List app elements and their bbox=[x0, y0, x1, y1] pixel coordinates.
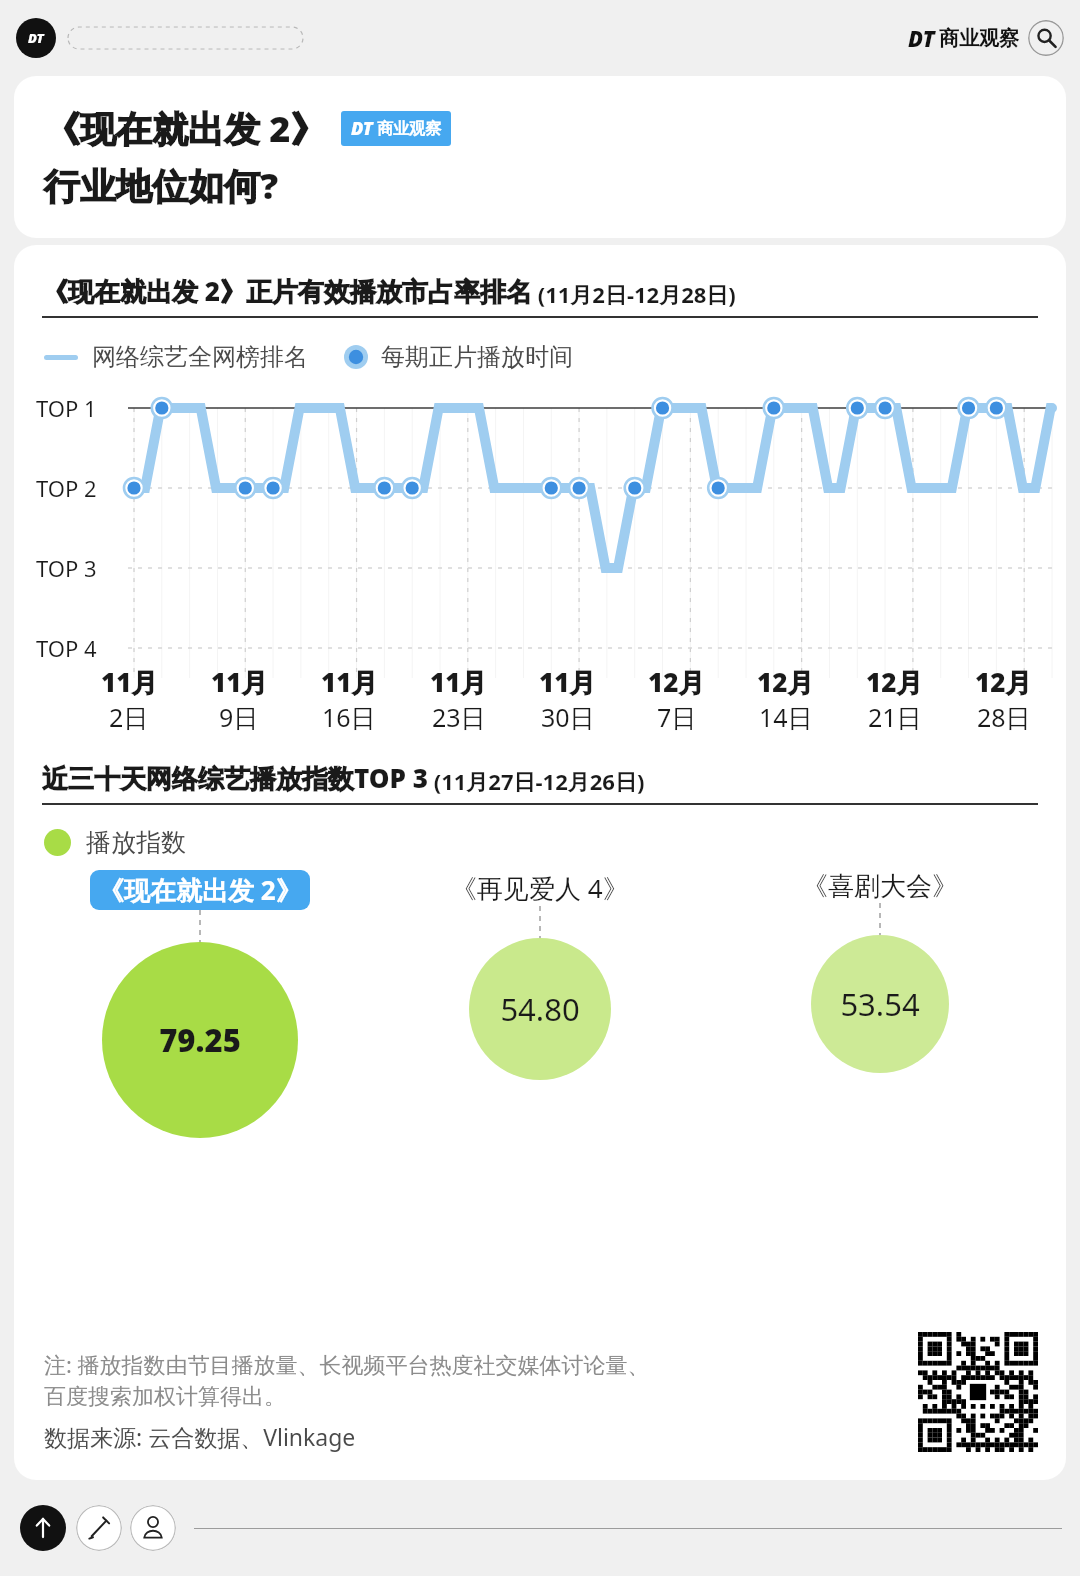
staticText: 28日 bbox=[977, 700, 1031, 734]
staticText: 《现在就出发 2》正片有效播放市占率排名 bbox=[42, 273, 532, 309]
staticText: 54.80 bbox=[500, 988, 580, 1030]
staticText: 商业观察 bbox=[377, 119, 441, 139]
button[interactable]: 《喜剧大会》 bbox=[710, 870, 1050, 1073]
staticText: 《喜剧大会》 bbox=[802, 870, 958, 903]
staticText: 2日 bbox=[109, 700, 149, 734]
staticText: TOP 2 bbox=[36, 473, 97, 503]
staticText: TOP 4 bbox=[36, 633, 97, 663]
staticText: 商业观察 bbox=[939, 26, 1019, 51]
staticText: 播放指数 bbox=[86, 827, 186, 858]
staticText: 数据来源: 云合数据、Vlinkage bbox=[44, 1421, 356, 1452]
staticText: 7日 bbox=[657, 700, 697, 734]
staticText: (11月2日-12月28日) bbox=[532, 279, 736, 309]
staticText: DT bbox=[351, 116, 373, 141]
staticText: 12月 bbox=[975, 664, 1032, 700]
button[interactable]: DT account bbox=[16, 18, 56, 58]
staticText: 《现在就出发 2》 bbox=[44, 104, 327, 153]
staticText: 12月 bbox=[648, 664, 705, 700]
staticText: DT bbox=[908, 23, 935, 53]
staticText: 11月 bbox=[211, 664, 268, 700]
button[interactable]: 《再见爱人 4》 bbox=[370, 870, 710, 1080]
staticText: 11月 bbox=[430, 664, 487, 700]
staticText: 每期正片播放时间 bbox=[381, 342, 573, 372]
button[interactable]: Profile bbox=[130, 1505, 176, 1551]
button[interactable]: Scroll to top bbox=[20, 1505, 66, 1551]
button[interactable]: Search bbox=[1028, 20, 1064, 56]
staticText: 16日 bbox=[322, 700, 376, 734]
staticText: DT bbox=[28, 29, 44, 47]
staticText: 注: 播放指数由节目播放量、长视频平台热度社交媒体讨论量、 bbox=[44, 1349, 650, 1379]
staticText: 30日 bbox=[541, 700, 595, 734]
staticText: 11月 bbox=[101, 664, 158, 700]
button[interactable]: Search field bbox=[68, 27, 303, 49]
staticText: 近三十天网络综艺播放指数TOP 3 bbox=[42, 760, 428, 796]
staticText: 53.54 bbox=[840, 983, 920, 1025]
staticText: 百度搜索加权计算得出。 bbox=[44, 1383, 286, 1411]
staticText: 《再见爱人 4》 bbox=[451, 870, 629, 906]
staticText: 9日 bbox=[219, 700, 259, 734]
staticText: 12月 bbox=[866, 664, 923, 700]
staticText: 网络综艺全网榜排名 bbox=[92, 342, 308, 372]
button[interactable]: 《现在就出发 2》 bbox=[30, 870, 370, 1138]
staticText: 14日 bbox=[759, 700, 813, 734]
staticText: TOP 3 bbox=[36, 553, 97, 583]
staticText: (11月27日-12月26日) bbox=[428, 766, 645, 796]
staticText: 12月 bbox=[757, 664, 814, 700]
staticText: 行业地位如何? bbox=[44, 161, 279, 210]
staticText: 79.25 bbox=[159, 1019, 241, 1061]
staticText: 21日 bbox=[868, 700, 922, 734]
staticText: 《现在就出发 2》 bbox=[98, 872, 302, 908]
staticText: 23日 bbox=[432, 700, 486, 734]
button[interactable]: Write bbox=[76, 1505, 122, 1551]
staticText: 11月 bbox=[539, 664, 596, 700]
staticText: TOP 1 bbox=[36, 393, 97, 423]
staticText: 11月 bbox=[321, 664, 378, 700]
